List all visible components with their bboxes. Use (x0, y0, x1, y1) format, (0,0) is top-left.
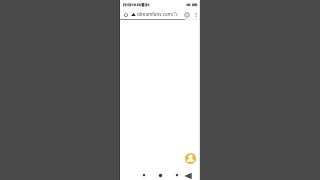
button[interactable]: Reload (122, 11, 129, 18)
button[interactable]: Assistant (175, 173, 179, 177)
staticText: /?c (172, 11, 178, 17)
button[interactable]: Home (158, 173, 163, 178)
staticText: idreamfans.com (137, 11, 172, 17)
button[interactable]: Account (185, 153, 196, 164)
button[interactable]: Back (184, 172, 192, 180)
button[interactable]: Tabs (183, 11, 190, 18)
button[interactable]: More options (192, 11, 199, 18)
button[interactable]: Recents (142, 173, 146, 177)
